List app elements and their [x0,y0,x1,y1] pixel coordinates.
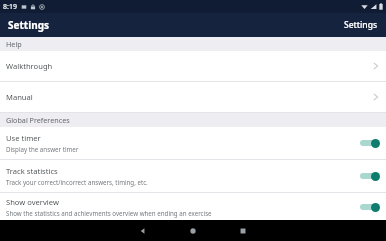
staticText: Settings [344,19,378,31]
staticText: Settings [8,18,49,32]
button[interactable]: Settings [336,15,386,35]
button[interactable]: Settings [0,15,57,35]
button[interactable]: Recent apps [218,220,268,241]
staticText: Use timer [6,133,41,143]
button[interactable]: Home [168,220,218,241]
staticText: Display the answer timer [6,145,79,153]
staticText: Global Preferences [6,115,70,125]
staticText: Manual [6,92,373,102]
button[interactable]: Show overview [0,193,386,220]
button[interactable]: Track statistics [0,160,386,192]
staticText: Show overview [6,197,59,207]
button[interactable]: Back [118,220,168,241]
button[interactable]: Use timer [0,127,386,159]
staticText: Help [6,39,22,49]
staticText: 8:19 [3,2,17,12]
staticText: Track statistics [6,166,58,176]
button[interactable]: Walkthrough [0,51,386,81]
button[interactable]: Toggle setting [358,169,380,183]
staticText: Show the statistics and achievments over… [6,209,212,217]
staticText: Walkthrough [6,61,373,71]
button[interactable]: Toggle setting [358,200,380,214]
staticText: Track your correct/incorrect answers, ti… [6,178,148,186]
button[interactable]: Manual [0,82,386,112]
button[interactable]: Toggle setting [358,136,380,150]
